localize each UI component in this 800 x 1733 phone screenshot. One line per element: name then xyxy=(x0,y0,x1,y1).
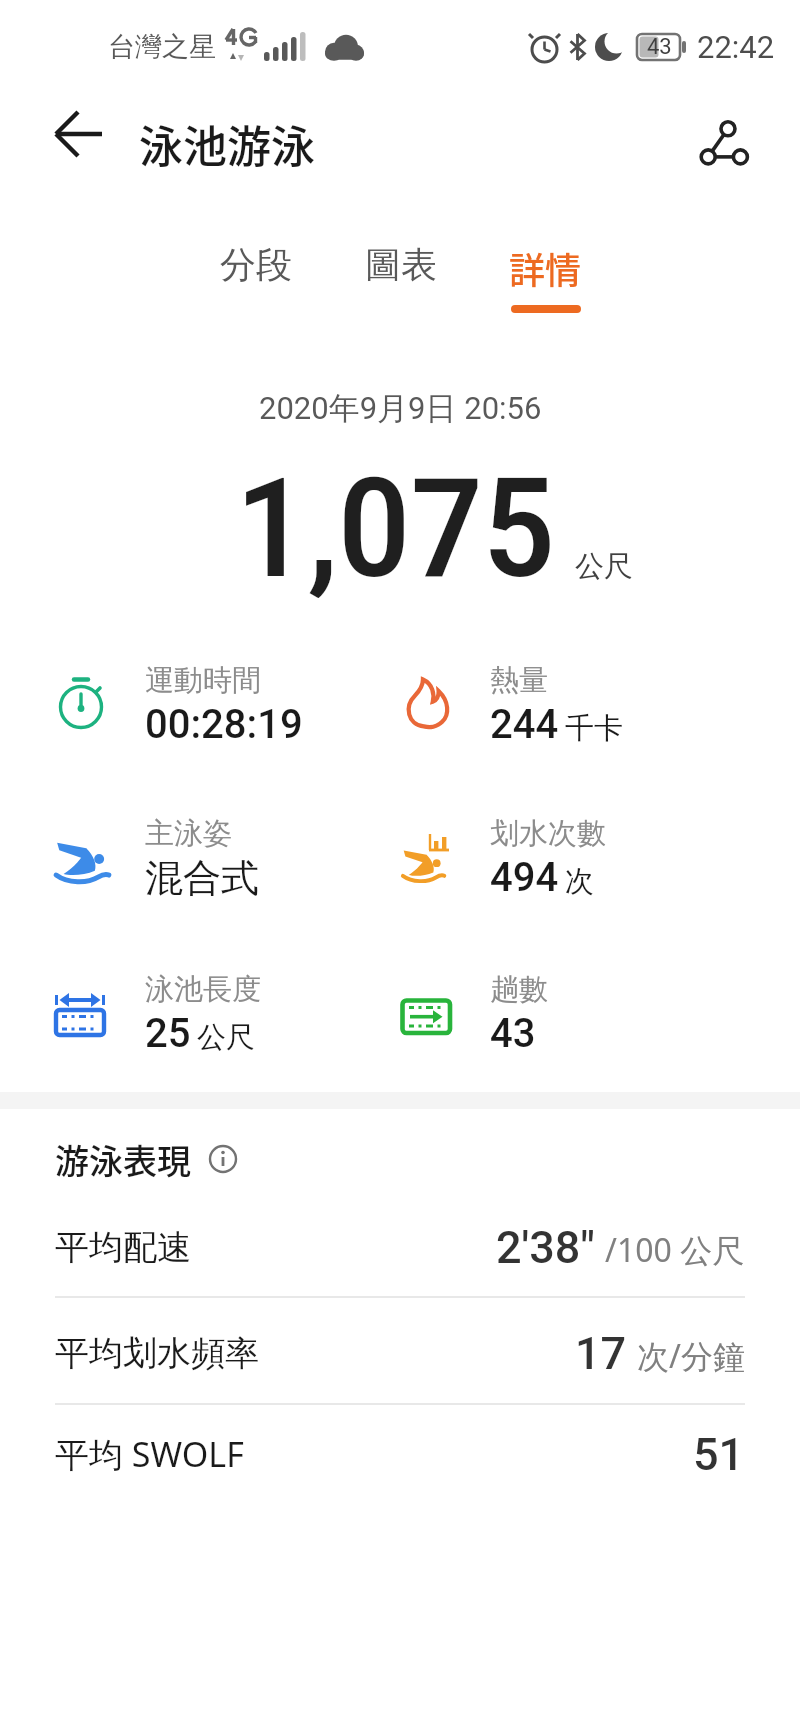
button[interactable]: 趟數 xyxy=(400,959,548,1069)
staticText: 00:28:19 xyxy=(145,701,303,748)
staticText: 公尺 xyxy=(197,1019,255,1056)
button[interactable]: 詳情 xyxy=(473,222,618,318)
staticText: 22:42 xyxy=(697,29,775,65)
staticText: 平均配速 xyxy=(55,1226,191,1269)
staticText: 泳池長度 xyxy=(145,971,261,1008)
button[interactable]: 主泳姿 xyxy=(55,803,259,913)
button[interactable]: 泳池長度 xyxy=(55,959,261,1069)
staticText: 主泳姿 xyxy=(145,815,232,852)
staticText: 划水次數 xyxy=(490,815,606,852)
staticText: 游泳表現 xyxy=(55,1135,191,1184)
staticText: 次 xyxy=(565,863,594,900)
button[interactable]: 運動時間 xyxy=(55,650,303,760)
staticText: 泳池游泳 xyxy=(139,112,315,176)
staticText: 25 xyxy=(145,1010,191,1057)
staticText: 43 xyxy=(647,34,672,60)
button[interactable] xyxy=(40,94,120,174)
staticText: 平均划水頻率 xyxy=(55,1332,259,1375)
staticText: 混合式 xyxy=(145,854,259,902)
staticText: 2'38" xyxy=(496,1221,595,1274)
staticText: 趟數 xyxy=(490,971,548,1008)
staticText: 詳情 xyxy=(509,242,582,294)
staticText: 運動時間 xyxy=(145,662,261,699)
staticText: 244 xyxy=(490,701,559,748)
button[interactable] xyxy=(686,108,758,180)
button[interactable]: 圖表 xyxy=(328,222,473,318)
staticText: 1,075 xyxy=(235,448,555,598)
button[interactable]: 平均划水頻率 xyxy=(0,1306,800,1400)
staticText: 分段 xyxy=(220,242,292,287)
staticText: 公尺 xyxy=(575,548,633,585)
staticText: 494 xyxy=(490,854,559,901)
staticText: 圖表 xyxy=(365,242,437,287)
staticText: 17 xyxy=(575,1327,627,1380)
staticText: 2020年9月9日 20:56 xyxy=(259,389,542,428)
button[interactable]: 分段 xyxy=(183,222,328,318)
staticText: 台灣之星 xyxy=(108,30,216,64)
button[interactable]: 平均配速 xyxy=(0,1200,800,1294)
staticText: 熱量 xyxy=(490,662,548,699)
staticText: 次/分鐘 xyxy=(637,1334,745,1378)
staticText: 千卡 xyxy=(565,710,623,747)
button[interactable]: 平均 SWOLF xyxy=(0,1407,800,1501)
button[interactable]: 划水次數 xyxy=(400,803,606,913)
staticText: /100 公尺 xyxy=(605,1228,745,1272)
button[interactable]: 熱量 xyxy=(400,650,623,760)
staticText: 43 xyxy=(490,1010,536,1057)
button[interactable]: 游泳表現 xyxy=(55,1132,237,1186)
staticText: 51 xyxy=(693,1428,745,1481)
staticText: 平均 SWOLF xyxy=(55,1431,244,1477)
